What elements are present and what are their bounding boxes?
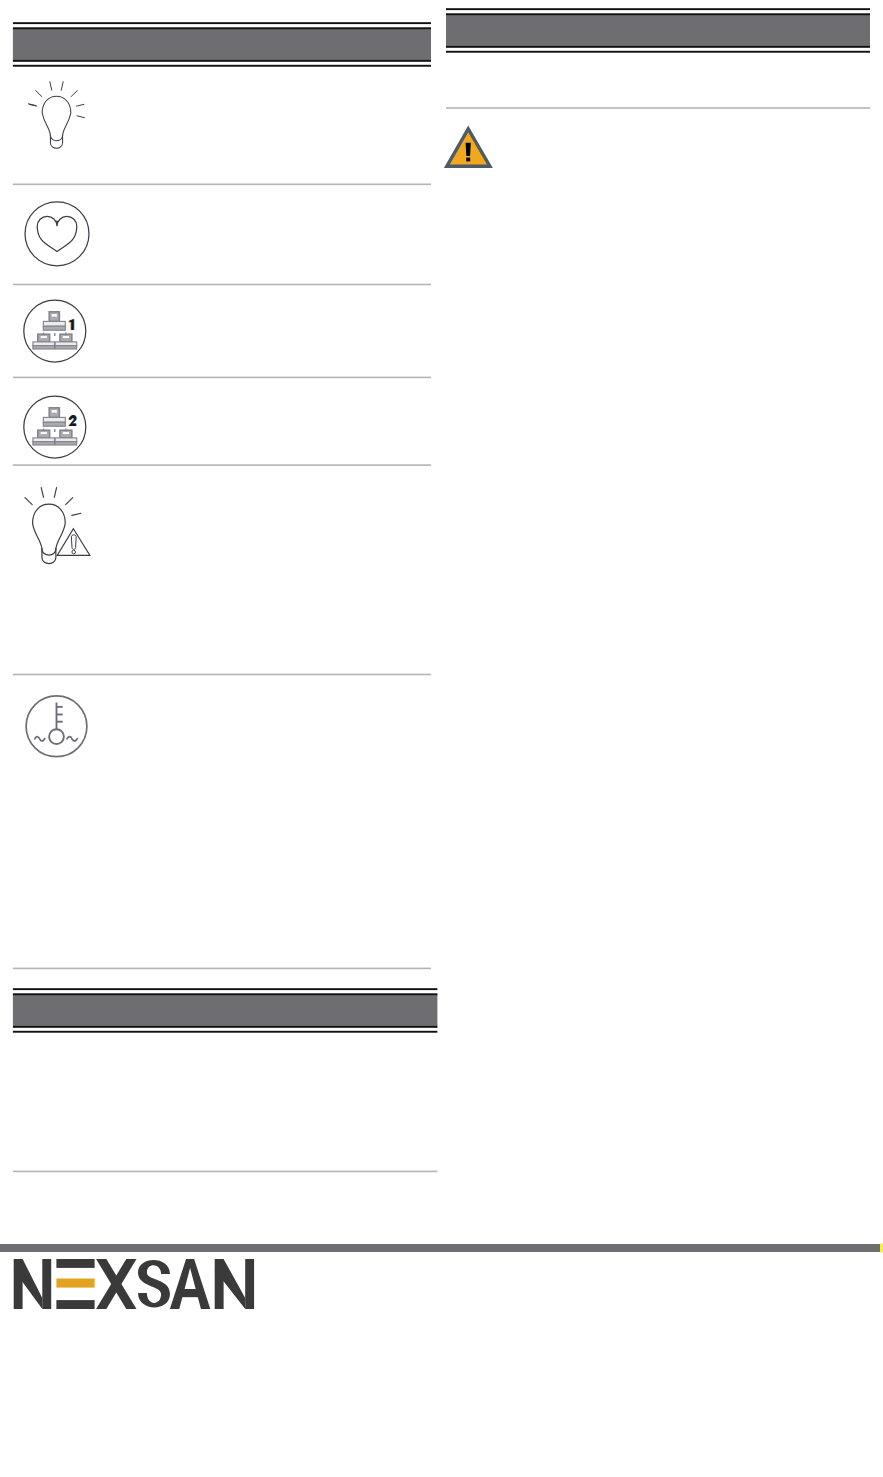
button[interactable]: Best practices [13,184,431,284]
button[interactable]: Important caution [13,465,431,674]
button[interactable]: Nexsan home [14,1259,257,1309]
button[interactable]: Warning notice [446,108,870,198]
other: Nexsan notice page [0,0,883,1477]
button[interactable]: Safety overview [446,53,870,108]
button[interactable]: Notes and tips [13,67,431,184]
button[interactable]: Network diagram 2 [13,377,431,465]
button[interactable]: Network diagram 1 [13,284,431,377]
button[interactable]: Environmental requirements [13,675,431,969]
